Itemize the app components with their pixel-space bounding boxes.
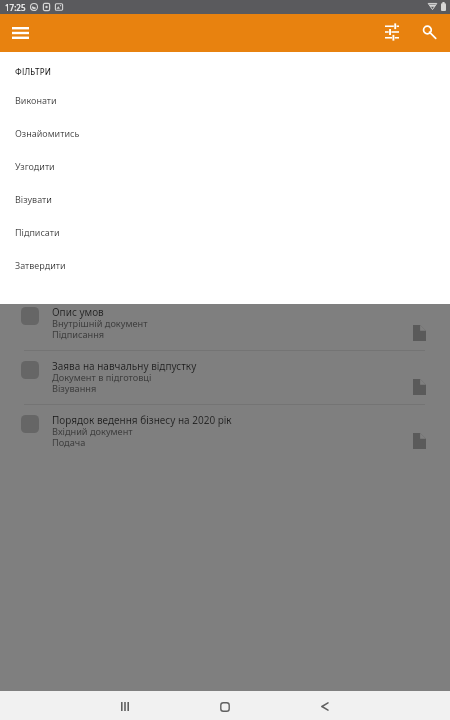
staticText: Узгодити [15, 160, 55, 172]
staticText: Затвердити [15, 259, 66, 271]
staticText: Внутрішній документ [52, 317, 148, 330]
button[interactable]: Back [303, 691, 347, 720]
button[interactable]: Filter [374, 14, 410, 50]
staticText: Вхідний документ [52, 425, 133, 438]
staticText: Ознайомитись [15, 127, 80, 139]
staticText: Виконати [15, 94, 57, 106]
button[interactable]: Опис умов [0, 297, 450, 351]
staticText: Порядок ведення бізнесу на 2020 рік [52, 413, 232, 427]
staticText: Заява на навчальну відпустку [52, 359, 197, 373]
staticText: ФІЛЬТРИ [15, 66, 52, 77]
staticText: Документ в підготовці [52, 371, 152, 384]
staticText: Підписати [15, 226, 60, 238]
staticText: Візування [52, 382, 97, 395]
button[interactable]: Підписати [0, 215, 450, 248]
button[interactable]: Виконати [0, 83, 450, 116]
staticText: Подача [52, 436, 86, 449]
button[interactable]: Search [409, 14, 445, 50]
staticText: Підписання [52, 328, 105, 341]
staticText: 17:25 [5, 2, 26, 13]
staticText: Візувати [15, 193, 52, 205]
button[interactable]: Візувати [0, 182, 450, 215]
staticText: Опис умов [52, 305, 104, 319]
button[interactable]: Порядок ведення бізнесу на 2020 рік [0, 405, 450, 459]
button[interactable]: Заява на навчальну відпустку [0, 351, 450, 405]
button[interactable]: Recent apps [103, 691, 147, 720]
button[interactable]: Home [203, 691, 247, 720]
button[interactable]: Ознайомитись [0, 116, 450, 149]
button[interactable]: Затвердити [0, 248, 450, 281]
button[interactable]: Узгодити [0, 149, 450, 182]
button[interactable]: Navigation menu [2, 14, 39, 51]
